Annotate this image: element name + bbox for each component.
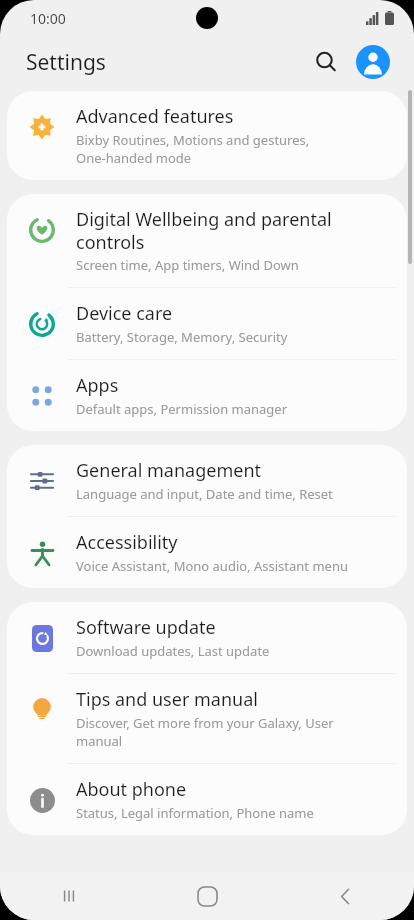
staticText: Discover, Get more from your Galaxy, Use… xyxy=(76,714,334,750)
staticText: General management xyxy=(76,458,262,483)
staticText: Default apps, Permission manager xyxy=(76,400,288,418)
staticText: Download updates, Last update xyxy=(76,642,270,660)
button[interactable]: Software update xyxy=(7,602,407,673)
button[interactable]: Back xyxy=(276,872,414,920)
staticText: Advanced features xyxy=(76,104,234,129)
staticText: Battery, Storage, Memory, Security xyxy=(76,328,288,346)
button[interactable]: Apps xyxy=(7,360,407,431)
staticText: Settings xyxy=(26,48,106,77)
staticText: 10:00 xyxy=(30,9,66,28)
staticText: Accessibility xyxy=(76,530,178,555)
staticText: Voice Assistant, Mono audio, Assistant m… xyxy=(76,557,348,575)
staticText: Software update xyxy=(76,615,216,640)
staticText: Tips and user manual xyxy=(76,687,258,712)
staticText: Status, Legal information, Phone name xyxy=(76,804,314,822)
staticText: Digital Wellbeing and parental controls xyxy=(76,207,332,254)
staticText: Screen time, App timers, Wind Down xyxy=(76,256,299,274)
staticText: Language and input, Date and time, Reset xyxy=(76,485,333,503)
button[interactable]: General management xyxy=(7,445,407,516)
staticText: About phone xyxy=(76,777,187,802)
staticText: Bixby Routines, Motions and gestures, On… xyxy=(76,131,310,167)
staticText: Apps xyxy=(76,373,119,398)
staticText: Device care xyxy=(76,301,173,326)
button[interactable]: Device care xyxy=(7,288,407,359)
button[interactable]: Home xyxy=(138,872,276,920)
button[interactable]: Account xyxy=(352,41,394,83)
button[interactable]: About phone xyxy=(7,764,407,835)
button[interactable]: Tips and user manual xyxy=(7,674,407,763)
button[interactable]: Accessibility xyxy=(7,517,407,588)
button[interactable]: Search xyxy=(305,41,347,83)
button[interactable]: Digital Wellbeing and parental controls xyxy=(7,194,407,287)
button[interactable]: Advanced features xyxy=(7,91,407,180)
button[interactable]: Recents xyxy=(0,872,138,920)
